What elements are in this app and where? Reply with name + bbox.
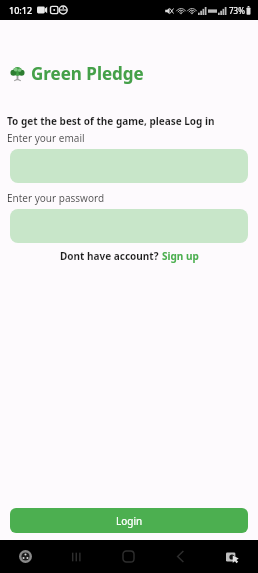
staticText: 10:12 [9, 4, 33, 16]
staticText: To get the best of the game, please Log … [7, 114, 215, 128]
staticText: Sign up [162, 249, 199, 263]
button[interactable]: Home [102, 540, 154, 573]
button[interactable]: Recent apps [51, 540, 102, 573]
button[interactable]: Text input field [10, 149, 248, 183]
button[interactable]: Back [154, 540, 206, 573]
button[interactable]: Login [10, 508, 248, 533]
button[interactable]: Sign up [162, 249, 199, 263]
staticText: Enter your email [7, 131, 85, 145]
staticText: Login [116, 514, 143, 528]
button[interactable]: Accessibility menu [0, 540, 51, 573]
staticText: Enter your password [7, 191, 105, 205]
staticText: 73% [229, 5, 245, 16]
button[interactable]: Text input field [10, 209, 248, 243]
staticText: Dont have account? [60, 249, 162, 263]
staticText: Green Pledge [31, 62, 144, 85]
button[interactable]: Change keyboard [206, 540, 258, 573]
